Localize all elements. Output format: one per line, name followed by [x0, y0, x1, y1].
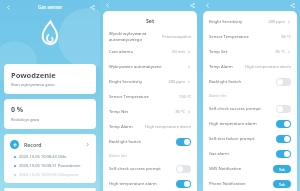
- staticText: Tak: [279, 182, 285, 187]
- button[interactable]: Back: [203, 1, 212, 10]
- staticText: Alarm tón: [209, 93, 227, 98]
- button[interactable]: Toggle off: [176, 165, 191, 173]
- button[interactable]: Phone Notification: [203, 176, 297, 191]
- button[interactable]: Record: [4, 134, 96, 183]
- button[interactable]: Sensor Temperature: [103, 89, 197, 104]
- staticText: High temperature alarm: [209, 121, 257, 127]
- staticText: Bright Sensitivity: [109, 79, 143, 85]
- button[interactable]: Temp Alarm: [203, 59, 297, 74]
- staticText: Wykrywanie automatyczne: [109, 64, 162, 70]
- button[interactable]: Wyniki wykrywania automatycznego: [103, 29, 197, 44]
- button[interactable]: Smart: [4, 188, 96, 191]
- staticText: Temp Set: [209, 49, 228, 55]
- staticText: 36 °C: [281, 34, 291, 39]
- button[interactable]: Self-check success prompt: [203, 101, 297, 116]
- staticText: Bright Sensitivity: [209, 19, 243, 25]
- button[interactable]: Temp Set: [203, 44, 297, 59]
- button[interactable]: Self-check success prompt: [103, 161, 197, 176]
- staticText: Phone Notification: [209, 181, 246, 187]
- staticText: Temp Alarm: [109, 124, 133, 130]
- button[interactable]: Self-test failure prompt: [203, 131, 297, 146]
- button[interactable]: Czas alarmu: [103, 44, 197, 59]
- staticText: Temp Alarm: [209, 64, 233, 70]
- staticText: Sensor Temperature: [209, 34, 249, 40]
- staticText: Set: [146, 17, 155, 24]
- button[interactable]: Sensor Temperature: [203, 29, 297, 44]
- staticText: High temperature alarm: [245, 64, 291, 69]
- staticText: Self-check success prompt: [209, 106, 261, 112]
- staticText: 60 min: [172, 49, 185, 54]
- staticText: Record: [24, 141, 42, 148]
- button[interactable]: Toggle off: [276, 105, 291, 113]
- button[interactable]: Toggle on: [276, 120, 291, 128]
- button[interactable]: Share: [87, 2, 97, 12]
- staticText: 200 ppm: [168, 79, 185, 84]
- button[interactable]: Temp Alarm: [103, 119, 197, 134]
- button[interactable]: High temperature alarm: [103, 176, 197, 191]
- staticText: Redukcja gazu: [11, 117, 40, 123]
- button[interactable]: Back: [103, 1, 112, 10]
- staticText: High temperature alarm: [109, 181, 157, 187]
- button[interactable]: Temp Net: [103, 104, 197, 119]
- staticText: 2020-10-05 10:08:31 Powodzenie: [19, 163, 81, 168]
- button[interactable]: Back: [3, 2, 13, 12]
- staticText: Powodzenie: [11, 70, 56, 80]
- button[interactable]: Gas alarm: [203, 146, 297, 161]
- button[interactable]: Alarm tón: [203, 89, 297, 101]
- staticText: Gas sensor: [38, 4, 63, 10]
- button[interactable]: Backlight Switch: [103, 134, 197, 149]
- staticText: Alarm tón: [109, 153, 127, 158]
- staticText: Gas alarm: [209, 151, 229, 157]
- button[interactable]: High temperature alarm: [203, 116, 297, 131]
- staticText: 2020-10-05 10:08:43 Okłn: [19, 154, 67, 159]
- staticText: Wyniki wykrywania automatycznego: [109, 31, 162, 42]
- staticText: 36 °C: [275, 49, 285, 54]
- staticText: 36 °C: [175, 109, 185, 114]
- staticText: Tak: [279, 167, 285, 172]
- button[interactable]: SMS Notification: [203, 161, 297, 176]
- button[interactable]: Bright Sensitivity: [203, 14, 297, 29]
- button[interactable]: Bright Sensitivity: [103, 74, 197, 89]
- button[interactable]: Tak: [273, 165, 291, 173]
- button[interactable]: Tak: [273, 180, 291, 188]
- staticText: Stan wykrywania gazu: [11, 82, 55, 88]
- button[interactable]: Powodzenie: [4, 64, 96, 94]
- staticText: High temperature alarm: [145, 124, 191, 129]
- button[interactable]: Toggle off: [276, 78, 291, 86]
- staticText: Sensor Temperature: [109, 94, 149, 100]
- button[interactable]: Backlight Switch: [203, 74, 297, 89]
- staticText: Backlight Switch: [209, 79, 242, 85]
- button[interactable]: Wykrywanie automatyczne: [103, 59, 197, 74]
- staticText: 136 °C: [178, 94, 191, 99]
- staticText: Czas alarmu: [109, 49, 134, 55]
- button[interactable]: Toggle on: [276, 135, 291, 143]
- staticText: Self-test failure prompt: [209, 136, 255, 142]
- button[interactable]: Share: [288, 1, 297, 10]
- button[interactable]: Toggle on: [276, 150, 291, 158]
- staticText: 2020-10-05 10:07:55 Odczytanie: [19, 172, 79, 177]
- staticText: Self-check success prompt: [109, 166, 161, 172]
- button[interactable]: 0 %: [4, 99, 96, 129]
- button[interactable]: Share: [188, 1, 197, 10]
- staticText: Temp Net: [109, 109, 129, 115]
- staticText: Backlight Switch: [109, 139, 142, 145]
- button[interactable]: Alarm tón: [103, 149, 197, 161]
- button[interactable]: Toggle on: [176, 180, 191, 188]
- staticText: 0 %: [11, 105, 24, 115]
- staticText: 200 ppm: [268, 19, 285, 24]
- button[interactable]: Toggle on: [176, 138, 191, 146]
- staticText: SMS Notification: [209, 166, 242, 172]
- staticText: Przeciwzapalne: [162, 34, 191, 39]
